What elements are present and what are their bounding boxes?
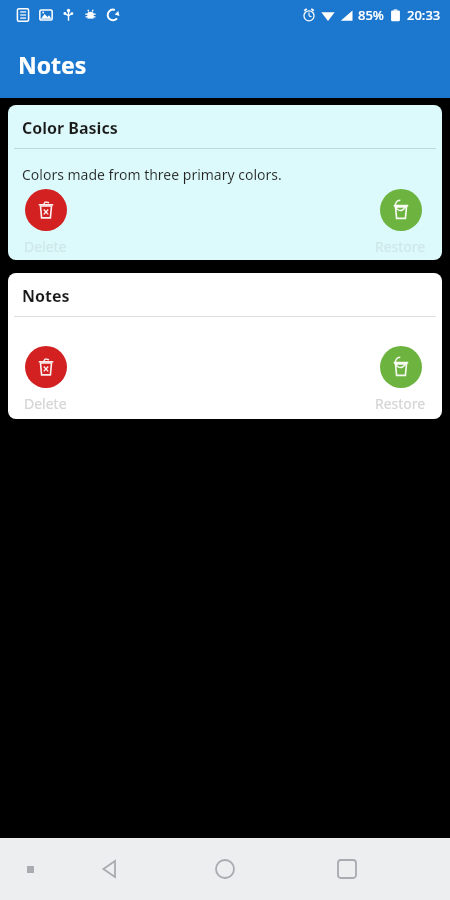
staticText: Delete xyxy=(24,237,67,256)
staticText: Notes xyxy=(18,49,87,80)
staticText: Colors made from three primary colors. xyxy=(22,165,282,184)
staticText: Delete xyxy=(24,394,67,413)
button[interactable]: Restore xyxy=(373,189,428,256)
staticText: 20:33 xyxy=(407,6,441,24)
button[interactable]: Notes xyxy=(8,273,442,419)
staticText: Restore xyxy=(375,394,426,413)
staticText: Color Basics xyxy=(22,117,118,139)
button[interactable]: Home xyxy=(206,850,244,888)
button[interactable]: Delete xyxy=(22,346,69,413)
button[interactable]: Color Basics xyxy=(8,105,442,260)
button[interactable]: Recent apps xyxy=(330,852,364,886)
staticText: 85% xyxy=(358,6,384,24)
staticText: Notes xyxy=(22,285,70,307)
staticText: Restore xyxy=(375,237,426,256)
button[interactable]: Restore xyxy=(373,346,428,413)
button[interactable]: Back xyxy=(92,852,126,886)
button[interactable]: Delete xyxy=(22,189,69,256)
